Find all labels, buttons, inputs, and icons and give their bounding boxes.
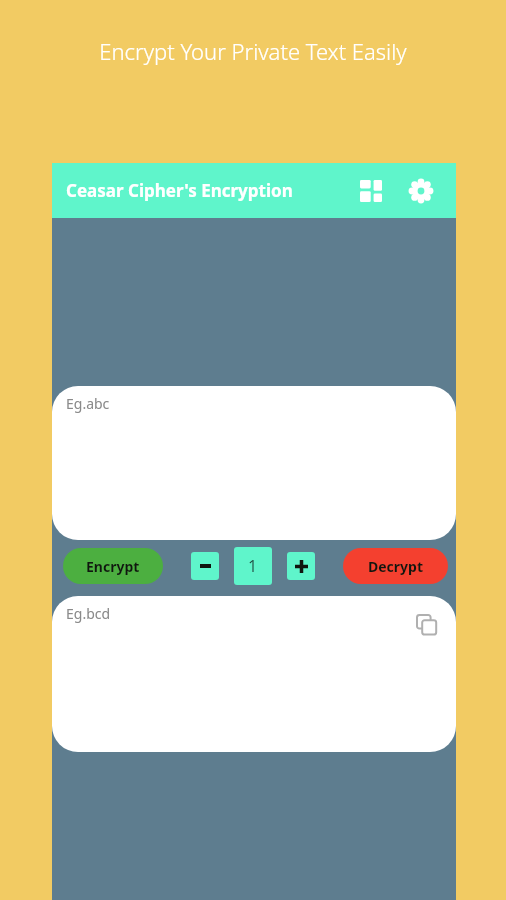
button[interactable]: Encrypt bbox=[63, 548, 163, 584]
button[interactable]: Eg.bcd bbox=[52, 596, 456, 752]
button[interactable]: Increase shift bbox=[287, 552, 315, 580]
button[interactable]: Settings bbox=[402, 172, 440, 210]
button[interactable]: Dashboard bbox=[352, 172, 390, 210]
staticText: Decrypt bbox=[368, 557, 424, 576]
staticText: Eg.bcd bbox=[66, 604, 111, 623]
button[interactable]: Copy bbox=[412, 610, 442, 640]
staticText: Encrypt bbox=[86, 557, 140, 576]
button[interactable]: 1 bbox=[234, 547, 272, 585]
staticText: Encrypt Your Private Text Easily bbox=[56, 36, 450, 66]
staticText: Eg.abc bbox=[66, 394, 110, 413]
button[interactable]: Eg.abc bbox=[52, 386, 456, 540]
button[interactable]: Decrease shift bbox=[191, 552, 219, 580]
button[interactable]: Decrypt bbox=[343, 548, 448, 584]
staticText: 1 bbox=[248, 555, 258, 577]
staticText: Ceasar Cipher's Encryption bbox=[66, 179, 293, 202]
